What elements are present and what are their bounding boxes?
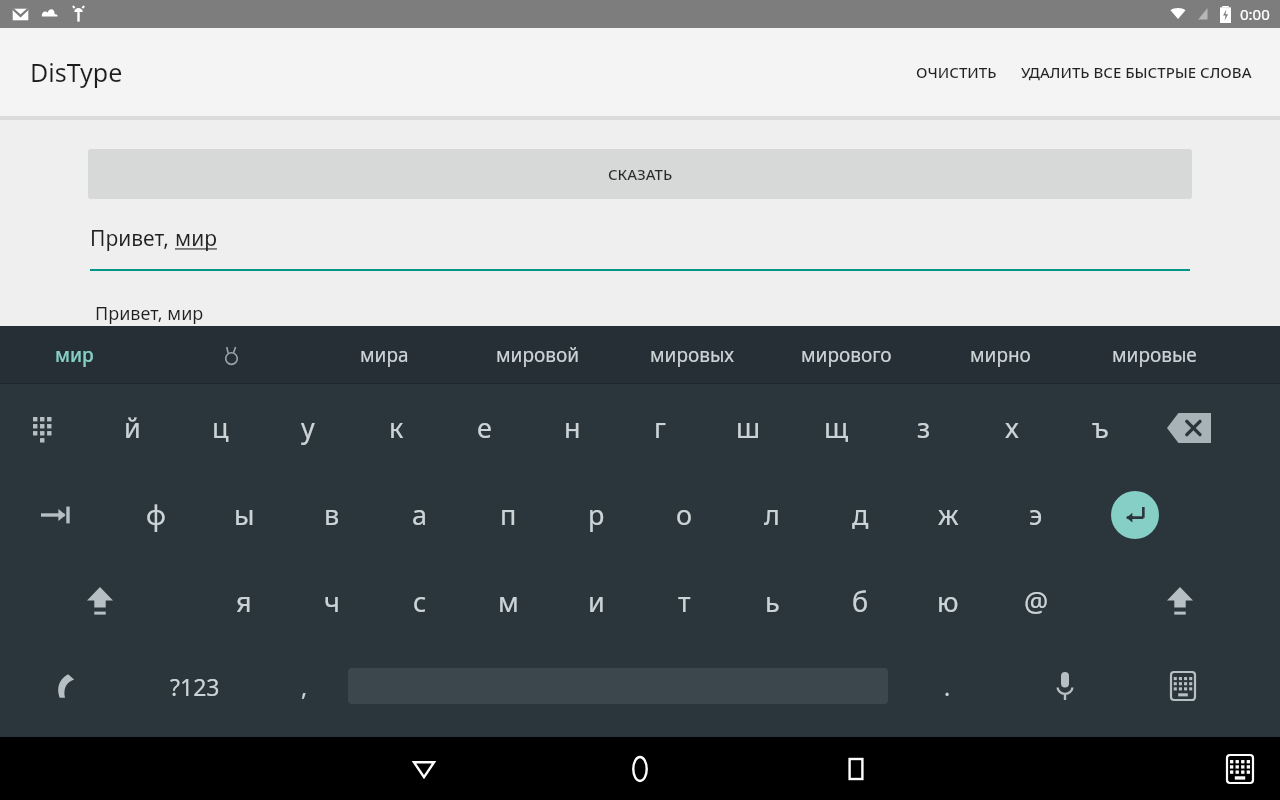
staticText: б <box>852 583 869 620</box>
button[interactable]: ф <box>112 471 200 558</box>
button[interactable]: д <box>816 471 904 558</box>
button[interactable]: Key <box>1124 645 1242 727</box>
button[interactable]: ц <box>176 384 264 471</box>
staticText: ф <box>146 496 166 533</box>
staticText: щ <box>824 409 849 446</box>
button[interactable]: Key <box>0 471 112 558</box>
button[interactable]: э <box>992 471 1080 558</box>
button[interactable]: и <box>552 558 640 645</box>
button[interactable]: о <box>640 471 728 558</box>
staticText: мировой <box>496 342 580 368</box>
staticText: я <box>236 583 252 620</box>
button[interactable]: ъ <box>1056 384 1144 471</box>
button[interactable]: Recents <box>825 738 887 800</box>
staticText: с <box>413 583 427 620</box>
button[interactable]: УДАЛИТЬ ВСЕ БЫСТРЫЕ СЛОВА <box>1009 48 1264 96</box>
button[interactable]: Back <box>393 738 455 800</box>
button[interactable]: р <box>552 471 640 558</box>
staticText: 0:00 <box>1240 4 1270 24</box>
staticText: ъ <box>1092 409 1109 446</box>
staticText: к <box>389 409 404 446</box>
button[interactable]: мир <box>55 342 94 368</box>
button[interactable]: ы <box>200 471 288 558</box>
button[interactable]: Key <box>888 645 1006 727</box>
button[interactable]: Space <box>348 645 888 727</box>
staticText: и <box>588 583 605 620</box>
button[interactable]: н <box>528 384 616 471</box>
staticText: мировые <box>1112 342 1197 368</box>
button[interactable]: Key <box>1006 645 1124 727</box>
button[interactable]: мирового <box>769 326 923 383</box>
staticText: УДАЛИТЬ ВСЕ БЫСТРЫЕ СЛОВА <box>1021 62 1252 82</box>
staticText: д <box>852 496 869 533</box>
staticText: ОЧИСТИТЬ <box>916 62 997 82</box>
button[interactable]: ОЧИСТИТЬ <box>904 48 1009 96</box>
button[interactable]: щ <box>792 384 880 471</box>
button[interactable]: б <box>816 558 904 645</box>
button[interactable]: мира <box>307 326 461 383</box>
button[interactable]: е <box>440 384 528 471</box>
button[interactable]: ь <box>728 558 816 645</box>
button[interactable]: @ <box>992 558 1080 645</box>
staticText: мировых <box>650 342 735 368</box>
staticText: й <box>124 409 141 446</box>
staticText: т <box>678 583 691 620</box>
button[interactable]: в <box>288 471 376 558</box>
button[interactable]: Key <box>130 645 260 727</box>
button[interactable]: з <box>880 384 968 471</box>
button[interactable]: Emoji <box>214 338 248 372</box>
staticText: мир <box>175 224 217 253</box>
button[interactable]: п <box>464 471 552 558</box>
staticText: ю <box>937 583 959 620</box>
button[interactable]: ю <box>904 558 992 645</box>
button[interactable]: мировой <box>461 326 615 383</box>
button[interactable]: ш <box>704 384 792 471</box>
staticText: э <box>1029 496 1043 533</box>
button[interactable]: Key <box>0 558 200 645</box>
staticText: @ <box>1024 583 1049 620</box>
staticText: мирового <box>801 342 892 368</box>
button[interactable]: Привет, <box>90 224 1190 271</box>
button[interactable]: Key <box>1080 558 1280 645</box>
staticText: е <box>477 409 492 446</box>
button[interactable]: у <box>264 384 352 471</box>
button[interactable]: ж <box>904 471 992 558</box>
button[interactable]: мировых <box>615 326 769 383</box>
staticText: ?123 <box>170 671 220 702</box>
button[interactable]: Key <box>1080 471 1190 558</box>
staticText: Привет, <box>90 224 175 253</box>
button[interactable]: Key <box>0 645 130 727</box>
button[interactable]: ч <box>288 558 376 645</box>
staticText: м <box>498 583 519 620</box>
staticText: г <box>654 409 666 446</box>
staticText: ц <box>212 409 229 446</box>
button[interactable]: СКАЗАТЬ <box>88 149 1192 199</box>
button[interactable]: м <box>464 558 552 645</box>
button[interactable]: л <box>728 471 816 558</box>
button[interactable]: Key <box>1144 384 1234 471</box>
staticText: ш <box>736 409 761 446</box>
button[interactable]: Key <box>260 645 348 727</box>
button[interactable]: г <box>616 384 704 471</box>
button[interactable]: Привет, мир <box>95 301 204 326</box>
button[interactable]: Home <box>609 738 671 800</box>
button[interactable]: к <box>352 384 440 471</box>
staticText: ь <box>765 583 780 620</box>
staticText: в <box>324 496 340 533</box>
staticText: р <box>588 496 605 533</box>
button[interactable]: х <box>968 384 1056 471</box>
staticText: ы <box>234 496 255 533</box>
button[interactable]: т <box>640 558 728 645</box>
button[interactable]: мирно <box>923 326 1077 383</box>
staticText: н <box>564 409 581 446</box>
button[interactable]: мировые <box>1077 326 1231 383</box>
button[interactable]: я <box>200 558 288 645</box>
staticText: ч <box>324 583 340 620</box>
button[interactable]: й <box>88 384 176 471</box>
button[interactable]: Key <box>0 384 88 471</box>
button[interactable]: Keyboard <box>1212 741 1268 797</box>
button[interactable]: а <box>376 471 464 558</box>
staticText: о <box>676 496 693 533</box>
staticText: мирно <box>970 342 1031 368</box>
button[interactable]: с <box>376 558 464 645</box>
